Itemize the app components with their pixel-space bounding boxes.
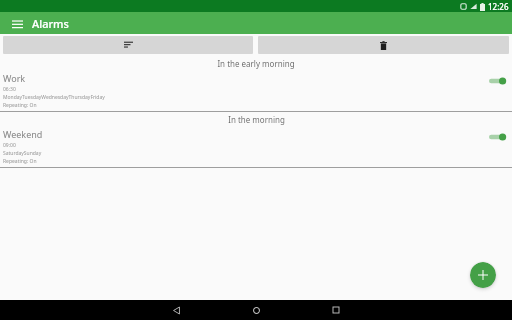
staticText: Repeating: On (3, 158, 37, 165)
staticText: In the early morning (217, 58, 295, 69)
staticText: Weekend (3, 128, 43, 140)
button[interactable]: Home (239, 300, 273, 320)
staticText: 06:30 (3, 86, 16, 93)
button[interactable]: Delete alarms (258, 36, 509, 54)
staticText: SaturdaySunday (3, 150, 42, 157)
button[interactable]: Open navigation drawer (8, 14, 26, 32)
staticText: In the morning (228, 114, 285, 125)
staticText: 12:26 (488, 1, 509, 12)
staticText: 09:00 (3, 142, 16, 149)
staticText: MondayTuesdayWednesdayThursdayFriday (3, 94, 105, 101)
button[interactable]: Toggle alarm (487, 131, 507, 143)
button[interactable]: Add alarm (470, 262, 496, 288)
button[interactable]: Weekend (0, 126, 512, 168)
staticText: Repeating: On (3, 102, 37, 109)
staticText: Alarms (32, 16, 69, 31)
button[interactable]: Back (159, 300, 193, 320)
staticText: Work (3, 72, 26, 84)
button[interactable]: Toggle alarm (487, 75, 507, 87)
button[interactable]: Work (0, 70, 512, 112)
button[interactable]: Recent apps (319, 300, 353, 320)
button[interactable]: Sort alarms (3, 36, 253, 54)
